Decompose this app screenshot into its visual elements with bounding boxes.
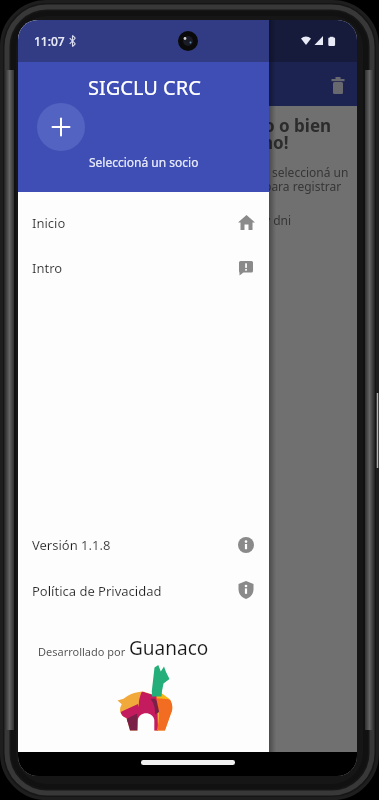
staticText: Guanaco: [129, 635, 209, 659]
button[interactable]: Inicio: [18, 201, 269, 245]
staticText: o o bien: [264, 114, 332, 137]
staticText: Versión 1.1.8: [32, 536, 111, 554]
button[interactable]: Política de Privacidad: [18, 569, 269, 613]
button[interactable]: [318, 66, 357, 102]
staticText: Seleccioná un socio: [89, 154, 199, 170]
staticText: SIGCLU CRC: [88, 74, 201, 101]
staticText: Desarrollado por: [38, 644, 129, 659]
staticText: seleccioná un: [272, 164, 349, 180]
staticText: Intro: [32, 259, 63, 277]
staticText: y dni: [264, 212, 292, 228]
button[interactable]: Intro: [18, 246, 269, 290]
button[interactable]: Versión 1.1.8: [18, 523, 269, 567]
staticText: para registrar: [264, 178, 342, 194]
staticText: Inicio: [32, 214, 66, 232]
staticText: 11:07: [34, 33, 65, 49]
staticText: no!: [262, 131, 289, 154]
staticText: Política de Privacidad: [32, 582, 162, 600]
button[interactable]: [37, 103, 85, 151]
